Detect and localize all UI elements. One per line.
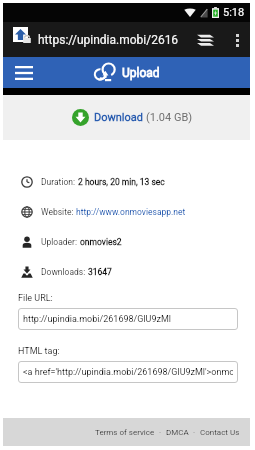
button[interactable]: Download	[72, 109, 193, 126]
staticText: Download	[94, 111, 143, 124]
staticText: File URL:	[18, 293, 53, 304]
staticText: http://upindia.mobi/261698/GlU9zMl	[23, 314, 171, 325]
staticText: Website:	[41, 207, 76, 217]
staticText: (1.04 GB)	[146, 111, 193, 124]
staticText: 2 hours, 20 min, 13 sec	[78, 177, 165, 187]
button[interactable]: DMCA	[166, 428, 189, 437]
staticText: 5:18	[223, 6, 245, 19]
button[interactable]: Menu	[10, 59, 38, 87]
button[interactable]: Terms of service	[95, 428, 155, 437]
staticText: Upload	[122, 66, 160, 80]
button[interactable]: Contact Us	[200, 428, 240, 437]
button[interactable]: http://www.onmoviesapp.net	[76, 207, 186, 217]
staticText: Uploader:	[41, 237, 80, 247]
staticText: Downloads:	[41, 267, 88, 277]
staticText: ·	[155, 428, 166, 437]
button[interactable]: More options	[226, 29, 248, 51]
staticText: onmovies2	[80, 237, 122, 247]
staticText: <a href='http://upindia.mobi/261698/GlU9…	[23, 367, 233, 378]
staticText: ·	[189, 428, 200, 437]
staticText: 31647	[88, 267, 112, 277]
staticText: Duration:	[41, 177, 78, 187]
button[interactable]: Tabs	[193, 28, 217, 52]
staticText: HTML tag:	[18, 346, 60, 357]
staticText: https://upindia.mobi/2616	[38, 33, 191, 47]
